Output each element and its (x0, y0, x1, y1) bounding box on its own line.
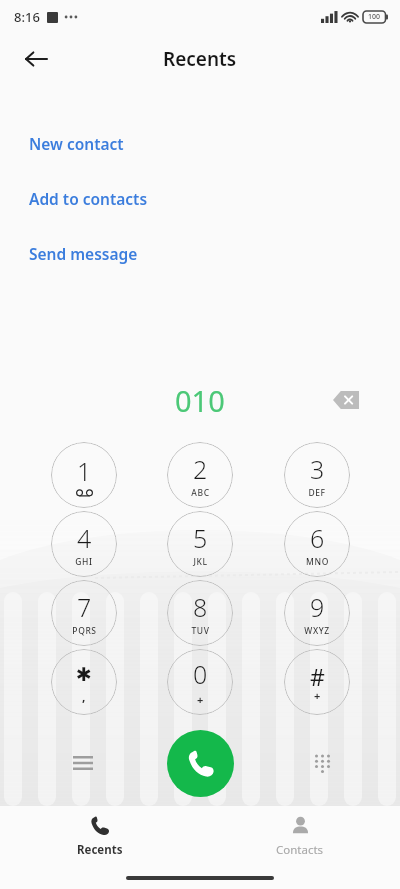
button[interactable]: 9 (284, 580, 350, 646)
button[interactable]: 7 (51, 580, 117, 646)
staticText: Send message (29, 243, 138, 264)
button[interactable]: 1 (51, 442, 117, 508)
staticText: Recents (77, 842, 123, 858)
staticText: 8 (193, 590, 208, 624)
staticText: + (197, 692, 204, 707)
button[interactable]: New contact (0, 116, 400, 171)
staticText: 100 (368, 12, 381, 22)
button[interactable]: Dialpad (298, 739, 346, 787)
staticText: 3 (310, 452, 325, 486)
staticText: 8:16 (14, 8, 40, 26)
button[interactable]: Contacts (200, 806, 400, 867)
button[interactable]: ✱ (51, 649, 117, 715)
staticText: 6 (310, 521, 325, 555)
button[interactable]: Call log options (59, 739, 107, 787)
staticText: 9 (310, 590, 325, 624)
button[interactable]: Add to contacts (0, 171, 400, 226)
button[interactable]: Back (12, 35, 60, 83)
staticText: ABC (191, 487, 210, 499)
button[interactable]: 2 (167, 442, 233, 508)
staticText: 0 (193, 657, 208, 691)
staticText: 5 (193, 521, 208, 555)
staticText: ✱ (76, 663, 92, 685)
button[interactable]: 6 (284, 511, 350, 577)
button[interactable]: # (284, 649, 350, 715)
button[interactable]: 4 (51, 511, 117, 577)
staticText: , (82, 688, 86, 704)
button[interactable]: Call (167, 730, 234, 797)
staticText: Add to contacts (29, 188, 148, 209)
staticText: 1 (77, 454, 92, 488)
staticText: PQRS (72, 625, 97, 637)
staticText: 4 (77, 521, 92, 555)
staticText: WXYZ (304, 625, 330, 637)
staticText: New contact (29, 133, 124, 154)
button[interactable]: Send message (0, 226, 400, 281)
staticText: 2 (193, 452, 208, 486)
staticText: JKL (193, 556, 208, 568)
staticText: TUV (191, 625, 210, 637)
button[interactable]: 0 (167, 649, 233, 715)
staticText: DEF (308, 487, 326, 499)
button[interactable]: Recents (0, 806, 200, 867)
staticText: 7 (77, 590, 92, 624)
staticText: Contacts (276, 842, 324, 858)
button[interactable]: 8 (167, 580, 233, 646)
staticText: + (314, 688, 321, 703)
staticText: MNO (306, 556, 329, 568)
staticText: # (310, 661, 325, 687)
staticText: GHI (75, 556, 93, 568)
staticText: 010 (175, 381, 225, 420)
button[interactable]: 3 (284, 442, 350, 508)
button[interactable]: Backspace (324, 378, 368, 422)
button[interactable]: 5 (167, 511, 233, 577)
staticText: Recents (163, 46, 237, 72)
